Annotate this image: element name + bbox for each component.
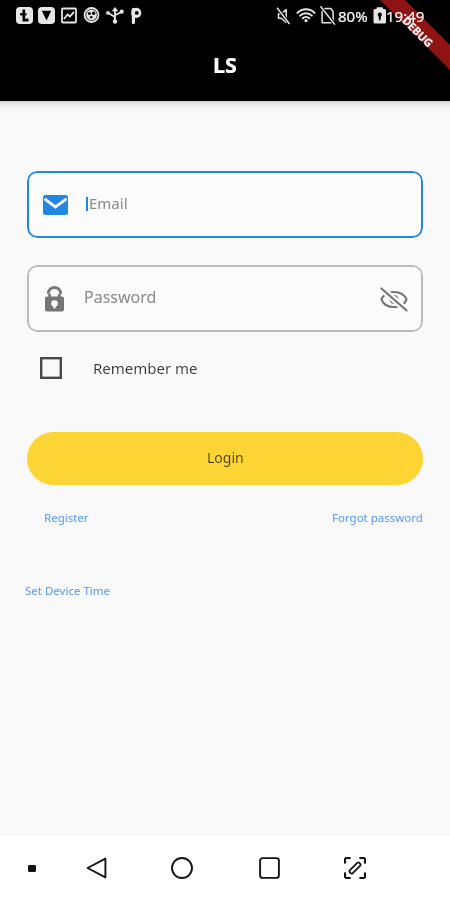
staticText: LS — [213, 50, 237, 79]
staticText: Login — [207, 448, 244, 467]
button[interactable]: Login — [27, 432, 423, 485]
staticText: 80% — [338, 6, 368, 26]
staticText: DEBUG — [399, 13, 437, 50]
staticText: Set Device Time — [25, 583, 110, 599]
button[interactable]: Email — [27, 171, 423, 238]
button[interactable]: Remember me — [27, 357, 198, 379]
button[interactable]: Screenshot — [333, 846, 377, 890]
staticText: 19:49 — [386, 6, 425, 26]
button[interactable]: Back — [74, 846, 118, 890]
staticText: Forgot password — [332, 510, 423, 526]
staticText: Password — [84, 286, 157, 308]
button[interactable]: Password — [27, 265, 423, 332]
staticText: Email — [89, 193, 128, 213]
staticText: Register — [44, 510, 89, 526]
button[interactable]: Set Device Time — [25, 583, 110, 599]
button[interactable]: Register — [44, 510, 89, 526]
staticText: Remember me — [93, 358, 198, 378]
button[interactable]: Recents — [247, 846, 291, 890]
button[interactable]: Keyboard — [10, 846, 54, 890]
button[interactable]: Show password — [372, 277, 416, 321]
button[interactable]: Forgot password — [332, 510, 423, 526]
button[interactable]: Home — [160, 846, 204, 890]
